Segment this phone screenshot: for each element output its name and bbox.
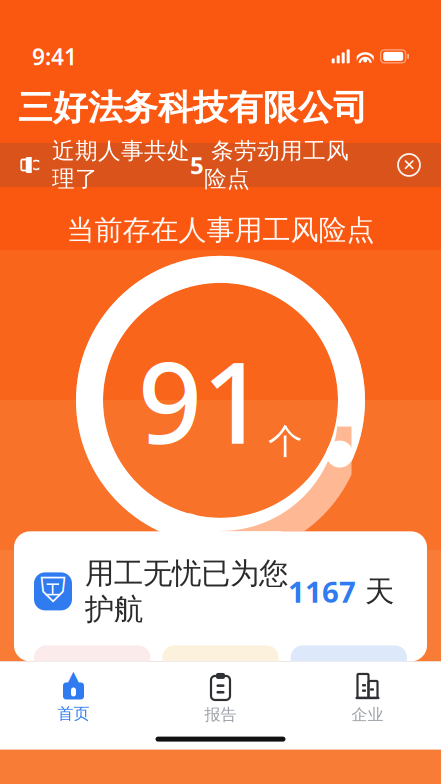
staticText: 中风险 xyxy=(176,671,251,702)
staticText: 首页 xyxy=(57,704,89,724)
button[interactable]: ⛉ xyxy=(14,531,427,645)
button[interactable]: 报告 xyxy=(147,664,294,729)
button[interactable]: 低风险 xyxy=(291,645,407,737)
button[interactable]: 企业 xyxy=(294,664,441,729)
staticText: 高风险 xyxy=(48,671,123,702)
button[interactable]: 高风险 xyxy=(34,645,150,737)
staticText: 天 xyxy=(356,573,394,609)
staticText: 5 xyxy=(190,149,204,181)
staticText: ▲ xyxy=(62,664,84,696)
staticText: 1167 xyxy=(288,572,356,611)
staticText: 企业 xyxy=(351,705,383,725)
staticText: 91 xyxy=(138,326,266,475)
staticText: 用工无忧已为您护航 xyxy=(85,555,288,627)
staticText: 报告 xyxy=(204,705,236,725)
button[interactable]: 近期人事共处理了 xyxy=(0,143,441,187)
staticText: 工 xyxy=(45,581,60,599)
staticText: 个 xyxy=(268,420,303,463)
staticText: 低风险 xyxy=(305,671,380,702)
staticText: 条劳动用工风险点 xyxy=(204,137,349,193)
staticText: ✕ xyxy=(402,156,415,174)
staticText: 当前存在人事用工风险点 xyxy=(66,213,374,247)
button[interactable]: ▲ xyxy=(0,665,147,728)
button[interactable]: 中风险 xyxy=(162,645,279,737)
staticText: 9:41 xyxy=(32,41,77,71)
staticText: 近期人事共处理了 xyxy=(52,137,190,193)
staticText: ⛉ xyxy=(40,574,66,608)
staticText: 三好法务科技有限公司 xyxy=(18,86,368,129)
